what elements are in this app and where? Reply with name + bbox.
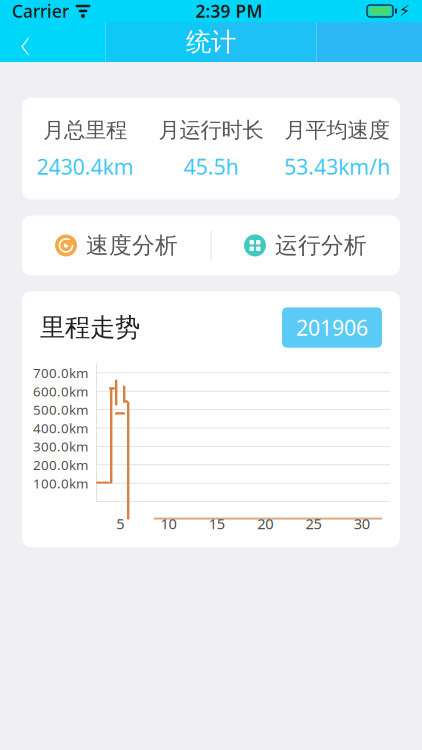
staticText: 201906	[296, 313, 368, 342]
staticText: 速度分析	[86, 231, 178, 259]
staticText: 200.0km	[33, 456, 88, 474]
staticText: 500.0km	[33, 401, 88, 418]
staticText: Carrier	[12, 0, 69, 22]
button[interactable]: Back	[0, 22, 50, 62]
staticText: 400.0km	[33, 419, 88, 437]
staticText: 700.0km	[33, 364, 88, 382]
staticText: ⚡︎	[399, 2, 410, 20]
staticText: 53.43km/h	[284, 152, 390, 180]
staticText: 15	[209, 514, 225, 533]
staticText: 25	[305, 514, 321, 533]
staticText: 运行分析	[275, 231, 367, 259]
staticText: 2:39 PM	[195, 0, 262, 22]
button[interactable]: 运行分析	[211, 215, 400, 275]
staticText: 5	[116, 514, 124, 533]
staticText: 45.5h	[183, 152, 238, 180]
staticText: 月运行时长	[158, 117, 263, 143]
staticText: 里程走势	[40, 312, 140, 343]
staticText: 30	[354, 514, 370, 533]
staticText: 20	[257, 514, 273, 533]
staticText: 100.0km	[33, 474, 88, 492]
button[interactable]: 201906	[282, 307, 382, 348]
staticText: 月平均速度	[284, 117, 389, 143]
staticText: 月总里程	[43, 117, 127, 143]
staticText: 600.0km	[33, 382, 88, 400]
staticText: 300.0km	[33, 438, 88, 455]
button[interactable]: 速度分析	[22, 215, 211, 275]
staticText: ‹	[20, 12, 30, 72]
staticText: 统计	[186, 26, 236, 57]
staticText: 2430.4km	[36, 152, 133, 180]
staticText: 10	[160, 514, 176, 533]
